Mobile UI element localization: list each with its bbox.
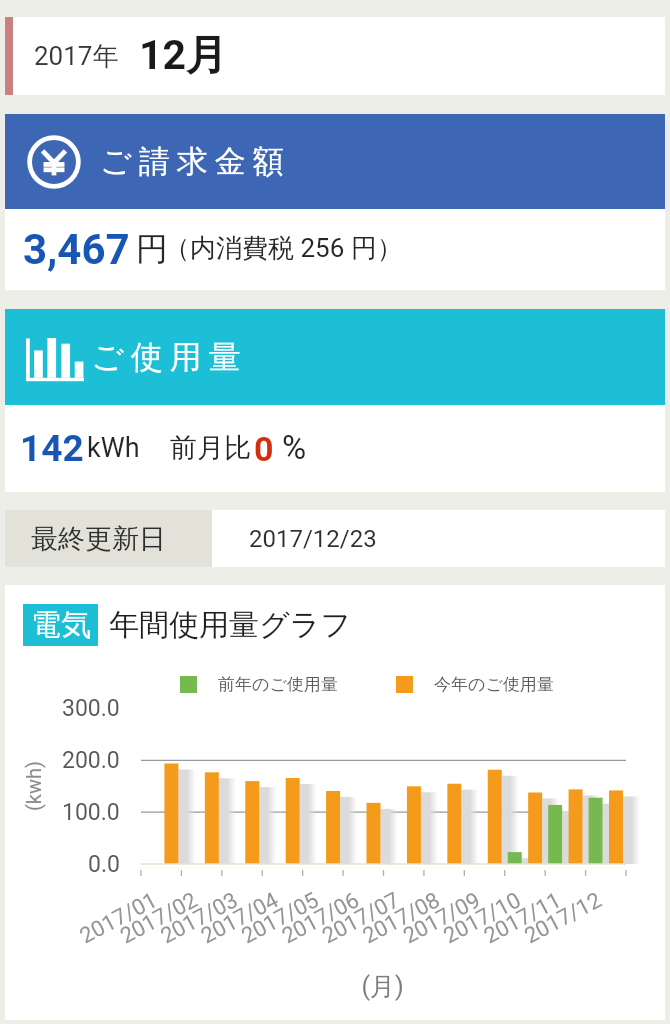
staticText: 12月 — [139, 30, 228, 82]
staticText: 前月比 — [170, 431, 251, 465]
staticText: 3,467 — [23, 225, 130, 274]
button[interactable]: ご請求金額 — [5, 114, 665, 209]
staticText: 電気 — [31, 606, 91, 644]
staticText: 142 — [20, 427, 84, 470]
staticText: 円 — [136, 229, 168, 269]
staticText: （内消費税 256 円） — [164, 232, 403, 265]
staticText: 最終更新日 — [31, 522, 166, 556]
staticText: ご請求金額 — [100, 142, 291, 181]
staticText: 年間使用量グラフ — [109, 606, 352, 644]
staticText: kWh — [87, 432, 140, 464]
staticText: ご使用量 — [91, 337, 248, 377]
button[interactable]: 142 — [5, 405, 665, 492]
staticText: 2017年 — [34, 40, 119, 73]
staticText: 0 — [254, 429, 274, 469]
staticText: % — [282, 428, 307, 467]
button[interactable]: 2017年 — [5, 17, 665, 95]
staticText: 2017/12/23 — [249, 525, 377, 553]
button[interactable]: 最終更新日 — [5, 510, 665, 567]
button[interactable]: 3,467 — [5, 209, 665, 290]
button[interactable]: ご使用量 — [5, 309, 665, 405]
